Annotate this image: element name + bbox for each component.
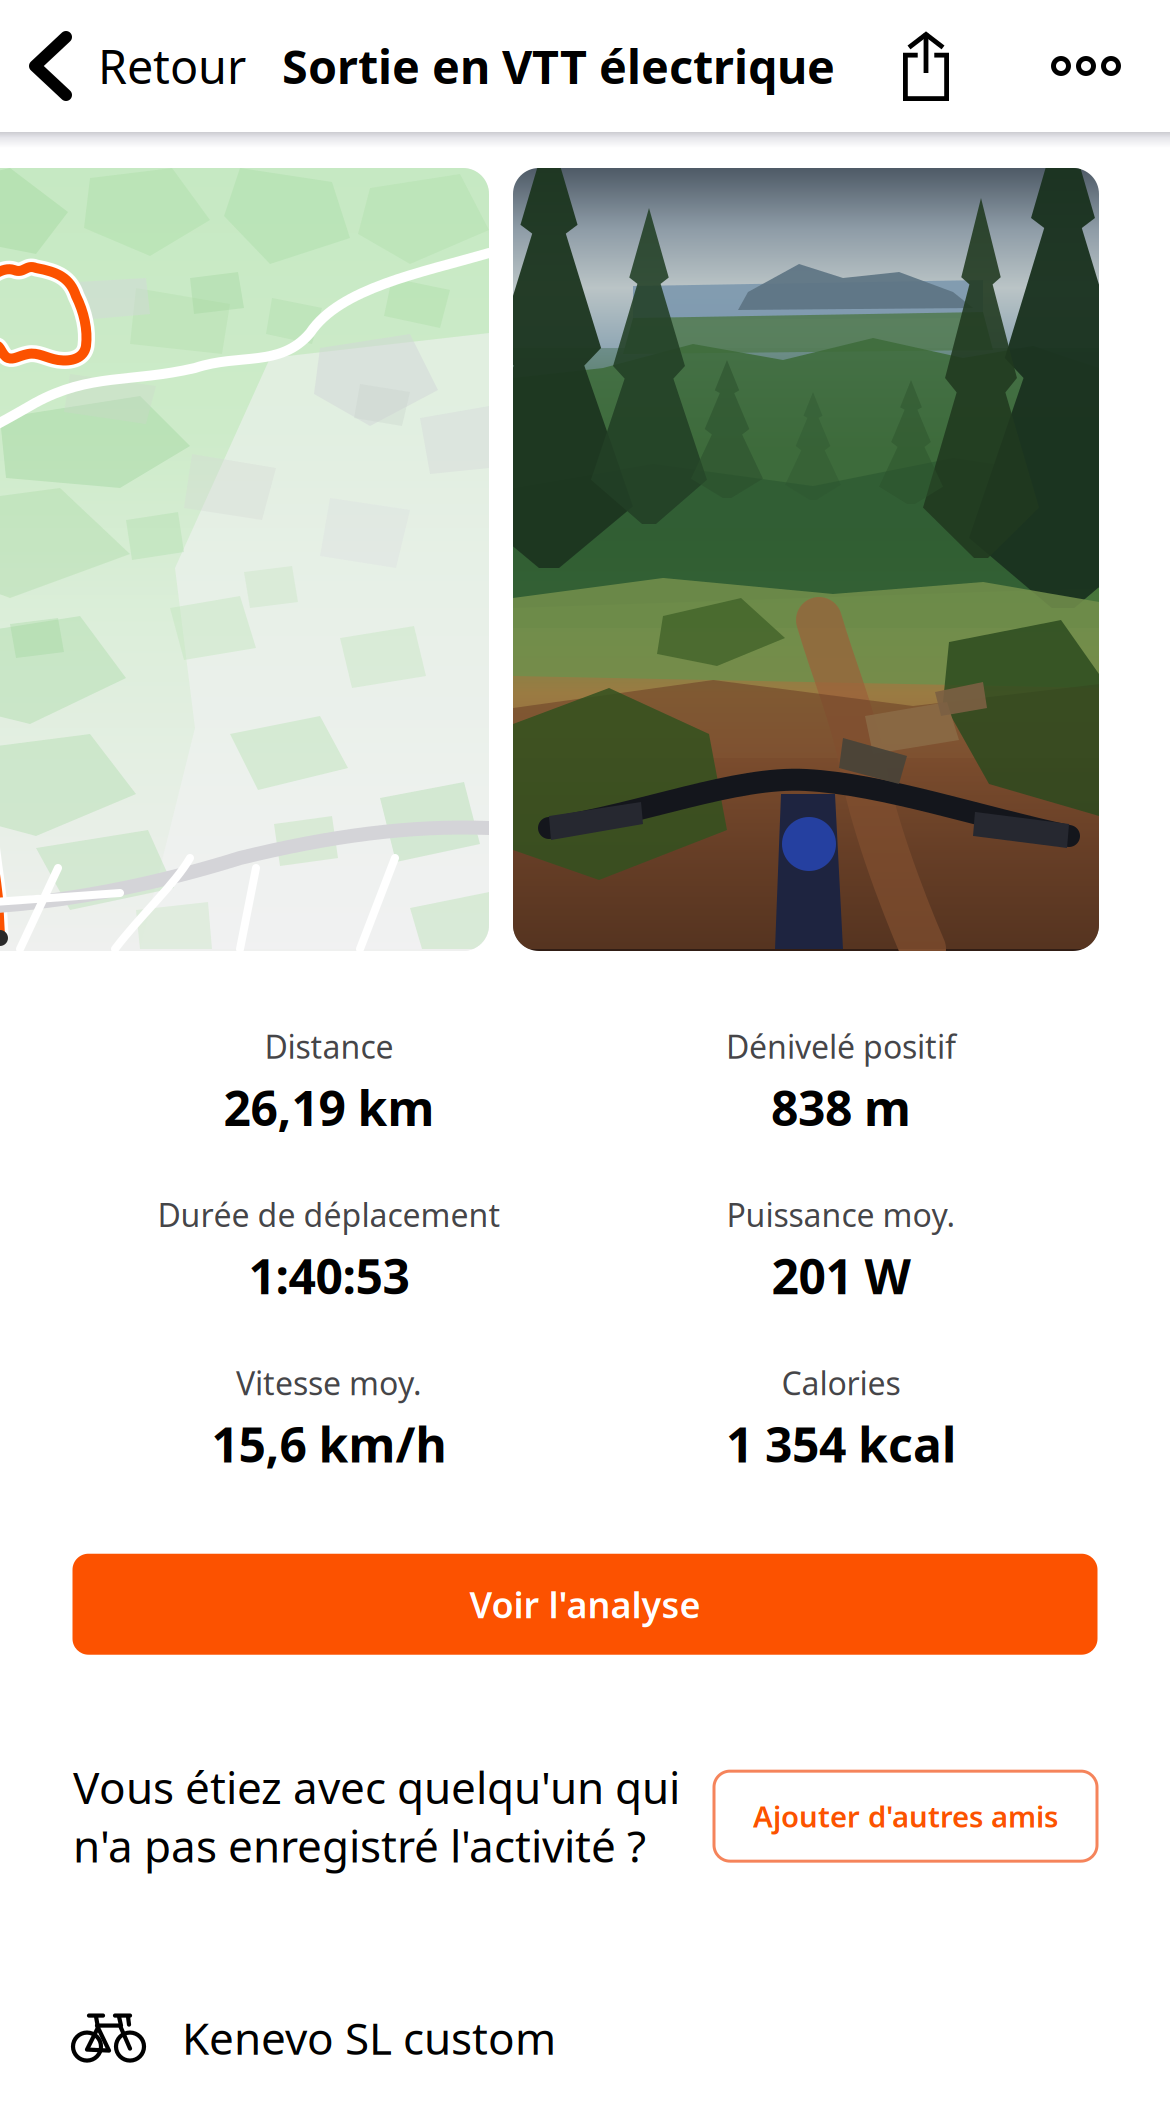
- staticText: 1 354 kcal: [726, 1412, 956, 1476]
- staticText: Ajouter d'autres amis: [753, 1797, 1058, 1836]
- staticText: 201 W: [771, 1244, 910, 1307]
- button[interactable]: Kenevo SL custom: [0, 1983, 1170, 2093]
- staticText: Vitesse moy.: [236, 1361, 422, 1404]
- staticText: Sortie en VTT électrique: [282, 35, 835, 97]
- button[interactable]: Plus d'options: [1017, 0, 1154, 132]
- staticText: 26,19 km: [223, 1075, 434, 1139]
- button[interactable]: Voir l'analyse: [72, 1554, 1097, 1655]
- staticText: Retour: [98, 35, 246, 97]
- staticText: Durée de déplacement: [157, 1193, 500, 1236]
- staticText: 838 m: [771, 1075, 911, 1139]
- button[interactable]: Carte du parcours: [0, 168, 489, 951]
- staticText: Distance: [264, 1025, 393, 1067]
- staticText: Voir l'analyse: [469, 1580, 700, 1628]
- staticText: 15,6 km/h: [211, 1412, 446, 1476]
- staticText: Puissance moy.: [726, 1193, 955, 1236]
- staticText: 1:40:53: [248, 1244, 409, 1307]
- button[interactable]: Photo de l'activité: [513, 168, 1099, 951]
- button[interactable]: Ajouter d'autres amis: [714, 1771, 1097, 1861]
- staticText: Vous étiez avec quelqu'un qui n'a pas en…: [73, 1758, 680, 1875]
- button[interactable]: Retour: [0, 0, 258, 132]
- staticText: Calories: [781, 1361, 900, 1404]
- button[interactable]: Partager: [879, 0, 1017, 132]
- staticText: Kenevo SL custom: [182, 2008, 556, 2067]
- staticText: Dénivelé positif: [726, 1025, 956, 1067]
